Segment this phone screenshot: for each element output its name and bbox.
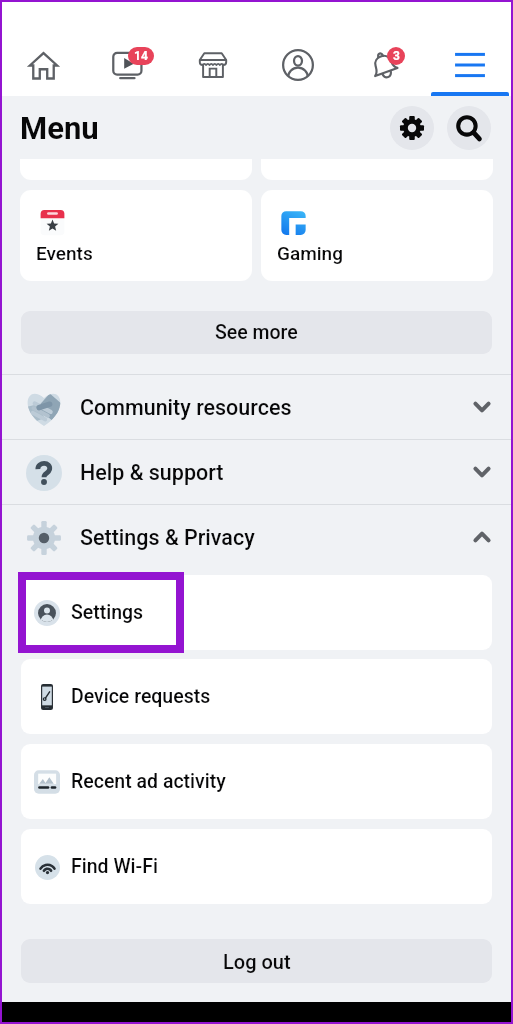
staticText: Events [36, 242, 93, 264]
button[interactable]: Profile [255, 0, 341, 96]
staticText: Find Wi-Fi [71, 855, 158, 878]
button[interactable]: Home [0, 0, 85, 96]
button[interactable]: Settings [390, 106, 434, 150]
button[interactable]: Help & support [0, 440, 513, 504]
staticText: Settings [71, 601, 144, 624]
button[interactable]: Marketplace [170, 0, 255, 96]
staticText: Recent ad activity [71, 770, 226, 793]
button[interactable]: Device requests [21, 659, 492, 734]
button[interactable]: Recent ad activity [21, 744, 492, 819]
staticText: Log out [223, 950, 291, 973]
staticText: Help & support [80, 460, 224, 485]
staticText: Settings & Privacy [80, 525, 255, 550]
button[interactable]: Log out [21, 939, 492, 983]
button[interactable]: Gaming [261, 190, 493, 281]
staticText: Menu [20, 110, 99, 146]
staticText: Gaming [277, 242, 343, 264]
button[interactable]: Community resources [0, 375, 513, 439]
button[interactable]: Events [20, 190, 252, 281]
button[interactable]: See more [21, 311, 492, 354]
staticText: See more [215, 321, 298, 344]
staticText: 3 [393, 49, 400, 63]
button[interactable]: Settings [21, 575, 492, 650]
staticText: 14 [134, 49, 148, 63]
staticText: Community resources [80, 395, 292, 420]
button[interactable]: Settings & Privacy [0, 505, 513, 569]
button[interactable]: Search [447, 106, 491, 150]
button[interactable]: Find Wi-Fi [21, 829, 492, 904]
button[interactable]: Video [85, 0, 170, 96]
staticText: Device requests [71, 685, 211, 708]
button[interactable]: Notifications [341, 0, 427, 96]
button[interactable]: Menu [427, 0, 513, 96]
